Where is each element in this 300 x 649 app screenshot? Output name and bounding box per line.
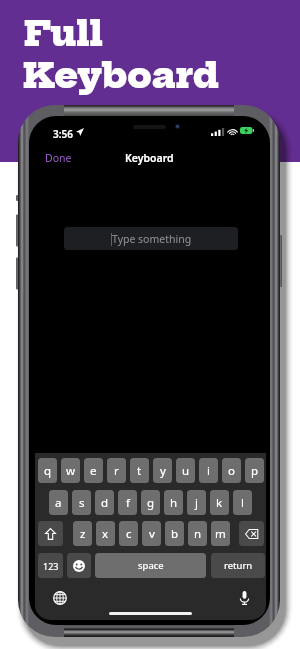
button[interactable]: t (130, 458, 149, 483)
button[interactable]: h (164, 490, 183, 515)
staticText: t (137, 463, 142, 479)
button[interactable]: a (49, 490, 68, 515)
button[interactable]: n (188, 521, 207, 546)
button[interactable]: return (211, 553, 265, 578)
button[interactable]: q (38, 458, 57, 483)
staticText: j (195, 495, 198, 511)
staticText: m (215, 526, 226, 542)
button[interactable]: u (176, 458, 195, 483)
staticText: 3:56 (53, 127, 73, 141)
staticText: b (171, 526, 179, 542)
staticText: w (66, 463, 76, 479)
button[interactable]: Done (41, 144, 270, 172)
staticText: q (44, 463, 52, 479)
staticText: Keyboard (125, 151, 174, 165)
button[interactable]: p (245, 458, 264, 483)
staticText: l (241, 495, 244, 511)
button[interactable]: r (107, 458, 126, 483)
staticText: u (182, 463, 190, 479)
staticText: 123 (43, 560, 59, 572)
button[interactable]: Backspace (239, 521, 264, 546)
staticText: h (170, 495, 178, 511)
button[interactable]: space (95, 553, 206, 578)
staticText: Type something (112, 232, 192, 246)
button[interactable]: s (72, 490, 91, 515)
button[interactable]: 123 (38, 553, 63, 578)
button[interactable]: Dictation (236, 590, 252, 606)
staticText: Keyboard (23, 53, 219, 97)
staticText: r (114, 463, 119, 479)
staticText: y (160, 463, 166, 479)
button[interactable]: v (142, 521, 161, 546)
button[interactable]: x (96, 521, 115, 546)
button[interactable]: l (233, 490, 252, 515)
button[interactable]: m (211, 521, 230, 546)
staticText: d (101, 495, 109, 511)
button[interactable]: o (222, 458, 241, 483)
button[interactable]: k (210, 490, 229, 515)
staticText: n (194, 526, 202, 542)
button[interactable]: z (73, 521, 92, 546)
staticText: z (80, 526, 86, 542)
staticText: Done (45, 151, 72, 165)
button[interactable]: f (118, 490, 137, 515)
staticText: return (224, 559, 253, 572)
button[interactable]: Switch keyboard (52, 590, 68, 606)
button[interactable]: g (141, 490, 160, 515)
button[interactable]: b (165, 521, 184, 546)
button[interactable]: j (187, 490, 206, 515)
staticText: a (55, 495, 62, 511)
button[interactable]: e (84, 458, 103, 483)
staticText: x (102, 526, 109, 542)
staticText: k (216, 495, 223, 511)
button[interactable]: c (119, 521, 138, 546)
staticText: f (126, 495, 130, 511)
button[interactable]: y (153, 458, 172, 483)
staticText: o (228, 463, 235, 479)
staticText: c (126, 526, 132, 542)
button[interactable]: i (199, 458, 218, 483)
staticText: g (147, 495, 155, 511)
staticText: space (138, 559, 164, 572)
staticText: s (79, 495, 85, 511)
staticText: Full (24, 11, 103, 55)
staticText: i (207, 463, 210, 479)
button[interactable]: d (95, 490, 114, 515)
button[interactable]: Shift (38, 521, 63, 546)
button[interactable]: Emoji (67, 553, 91, 578)
button[interactable]: w (61, 458, 80, 483)
staticText: v (149, 526, 155, 542)
staticText: p (251, 463, 259, 479)
staticText: e (90, 463, 97, 479)
button[interactable]: Type something (64, 227, 238, 250)
